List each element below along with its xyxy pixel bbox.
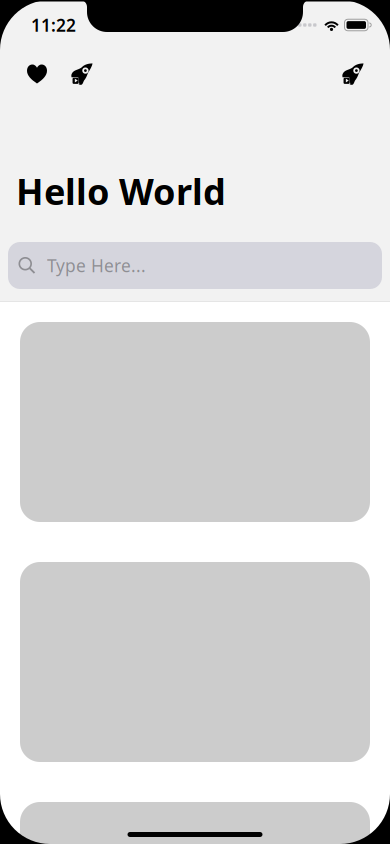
button[interactable]: Type Here... (8, 242, 382, 289)
button[interactable]: Launch (66, 58, 98, 90)
button[interactable]: Favourites (21, 58, 53, 90)
button[interactable]: Boost (337, 58, 369, 90)
staticText: Hello World (16, 167, 226, 215)
staticText: Type Here... (47, 254, 146, 277)
staticText: 11:22 (31, 13, 76, 36)
